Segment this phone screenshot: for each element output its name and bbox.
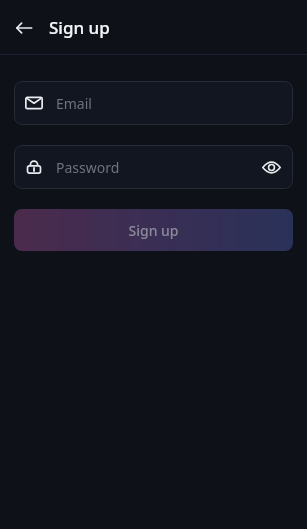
staticText: Password — [56, 158, 257, 177]
button[interactable]: Sign up — [14, 209, 293, 251]
staticText: Sign up — [128, 221, 179, 240]
staticText: Email — [56, 94, 92, 113]
button[interactable]: Show password — [257, 153, 285, 181]
button[interactable]: Email — [14, 81, 293, 125]
button[interactable]: Back — [10, 14, 38, 42]
staticText: Sign up — [49, 16, 110, 39]
button[interactable]: Password — [14, 145, 293, 189]
